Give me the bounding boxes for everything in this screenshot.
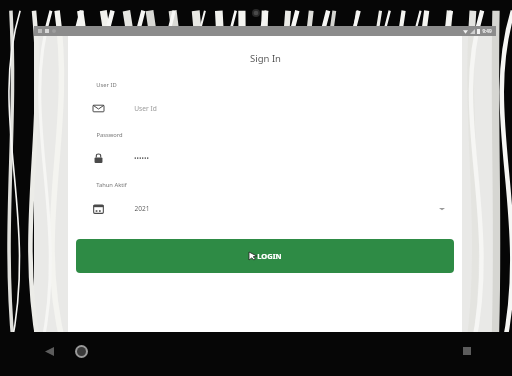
staticText: Sign In bbox=[250, 52, 281, 65]
button[interactable]: 2021 bbox=[76, 192, 454, 225]
button[interactable]: Home bbox=[70, 340, 92, 362]
button[interactable]: •••••• bbox=[76, 142, 454, 175]
staticText: User Id bbox=[134, 104, 157, 113]
button[interactable]: User Id bbox=[76, 92, 454, 125]
staticText: Password bbox=[96, 131, 123, 139]
staticText: User ID bbox=[96, 81, 117, 89]
button[interactable]: LOGIN bbox=[76, 239, 454, 273]
staticText: 9:49 bbox=[482, 28, 492, 34]
button[interactable]: Back bbox=[42, 344, 56, 358]
staticText: Tahun Aktif bbox=[96, 181, 127, 189]
staticText: •••••• bbox=[134, 154, 149, 163]
staticText: LOGIN bbox=[257, 251, 282, 261]
button[interactable]: Recent apps bbox=[461, 345, 473, 357]
staticText: 2021 bbox=[134, 204, 150, 213]
